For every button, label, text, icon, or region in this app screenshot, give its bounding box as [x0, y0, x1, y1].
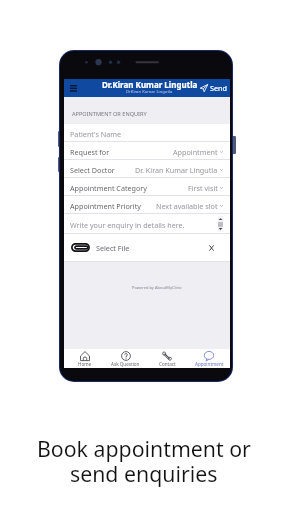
- button[interactable]: Appointment Category: [64, 178, 230, 195]
- staticText: Appointment: [173, 147, 218, 157]
- button[interactable]: Patient's Name: [64, 124, 230, 141]
- staticText: Book appointment or: [37, 434, 251, 463]
- staticText: Contact: [159, 361, 176, 367]
- button[interactable]: Contact: [146, 349, 188, 368]
- staticText: Request for: [70, 147, 110, 157]
- button[interactable]: Write your enquiry in details here.: [64, 214, 230, 233]
- staticText: Home: [78, 361, 92, 367]
- staticText: Write your enquiry in details here.: [70, 220, 185, 230]
- staticText: DrKiran Kumar Lingutla: [126, 89, 173, 95]
- staticText: Select Doctor: [70, 165, 115, 175]
- staticText: send enquiries: [70, 459, 218, 488]
- staticText: Appointment: [195, 361, 224, 367]
- button[interactable]: Send: [200, 79, 227, 97]
- button[interactable]: Select File: [64, 234, 230, 261]
- button[interactable]: Ask Question: [105, 349, 146, 368]
- button[interactable]: Appointment Priority: [64, 196, 230, 213]
- staticText: Ask Question: [111, 361, 140, 367]
- staticText: First visit: [188, 183, 218, 193]
- staticText: Dr. Kiran Kumar Lingutla: [135, 165, 218, 175]
- button[interactable]: Select Doctor: [64, 160, 230, 177]
- staticText: Send: [210, 83, 227, 93]
- staticText: Select File: [96, 243, 130, 253]
- button[interactable]: Appointment: [188, 349, 230, 368]
- staticText: Powered by AboutMyClinic: [132, 285, 182, 290]
- button[interactable]: Menu: [64, 79, 83, 97]
- staticText: APPOINTMENT OR ENQUIRY: [72, 110, 147, 118]
- staticText: Patient's Name: [70, 129, 122, 139]
- staticText: Dr.Kiran Kumar Lingutla: [102, 79, 198, 90]
- staticText: Appointment Priority: [70, 201, 141, 211]
- button[interactable]: Request for: [64, 142, 230, 159]
- staticText: Appointment Category: [70, 183, 147, 193]
- staticText: Next available slot: [156, 201, 218, 211]
- button[interactable]: Remove file: [212, 242, 223, 253]
- button[interactable]: Home: [64, 349, 105, 368]
